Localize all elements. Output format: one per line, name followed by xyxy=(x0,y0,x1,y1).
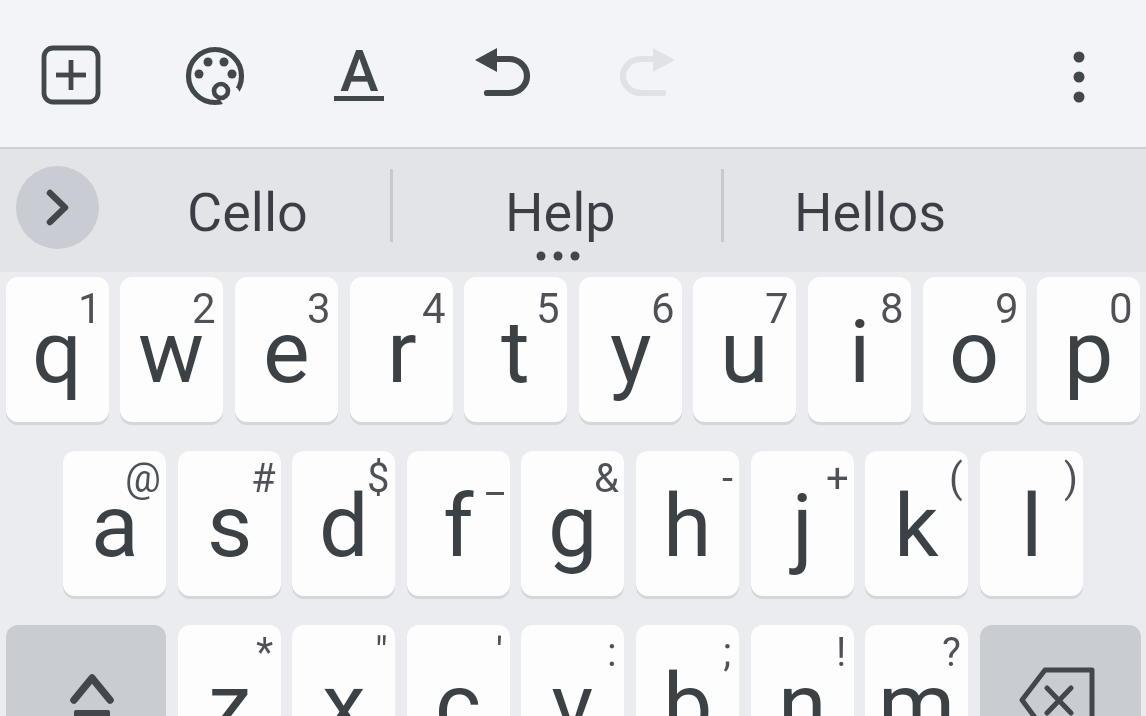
staticText: & xyxy=(594,455,619,502)
staticText: 8 xyxy=(880,284,904,333)
button[interactable]: k xyxy=(865,451,968,596)
button[interactable]: r xyxy=(350,277,453,422)
staticText: 7 xyxy=(765,284,789,333)
staticText: Help xyxy=(505,181,616,244)
staticText: z xyxy=(208,653,252,716)
button[interactable]: b xyxy=(636,625,739,716)
button[interactable] xyxy=(16,166,99,249)
staticText: y xyxy=(610,300,652,403)
staticText: u xyxy=(720,300,769,403)
staticText: e xyxy=(263,300,310,403)
staticText: 6 xyxy=(651,284,675,333)
staticText: a xyxy=(91,474,139,577)
button[interactable]: f xyxy=(407,451,510,596)
staticText: ? xyxy=(942,629,961,676)
staticText: # xyxy=(251,455,276,502)
staticText: n xyxy=(778,653,827,716)
button[interactable] xyxy=(38,42,104,108)
staticText: m xyxy=(878,653,956,716)
staticText: s xyxy=(207,474,253,577)
button[interactable]: g xyxy=(521,451,624,596)
button[interactable]: v xyxy=(521,625,624,716)
staticText: o xyxy=(949,300,1000,403)
staticText: t xyxy=(501,300,530,403)
button[interactable]: j xyxy=(751,451,854,596)
button[interactable] xyxy=(182,45,246,109)
staticText: ) xyxy=(1064,455,1078,502)
staticText: k xyxy=(894,474,939,577)
button[interactable]: q xyxy=(6,277,109,422)
staticText: * xyxy=(256,629,274,676)
staticText: 0 xyxy=(1109,284,1133,333)
button[interactable]: A xyxy=(327,30,391,114)
staticText: h xyxy=(663,474,712,577)
button[interactable]: n xyxy=(751,625,854,716)
staticText: j xyxy=(792,474,814,577)
staticText: " xyxy=(375,629,388,676)
staticText: b xyxy=(663,653,713,716)
staticText: ! xyxy=(836,629,847,676)
button[interactable] xyxy=(611,38,683,110)
staticText: l xyxy=(1021,474,1043,577)
staticText: ( xyxy=(949,455,963,502)
button[interactable]: h xyxy=(636,451,739,596)
staticText: _ xyxy=(486,455,505,502)
staticText: Hellos xyxy=(794,181,947,244)
staticText: : xyxy=(607,629,617,676)
staticText: $ xyxy=(367,455,390,502)
staticText: p xyxy=(1064,300,1114,403)
button[interactable]: Hellos xyxy=(740,180,1000,244)
button[interactable]: i xyxy=(808,277,911,422)
staticText: d xyxy=(319,474,369,577)
staticText: + xyxy=(826,455,849,502)
staticText: f xyxy=(443,474,474,577)
staticText: 3 xyxy=(307,284,331,333)
button[interactable] xyxy=(980,625,1141,716)
button[interactable]: p xyxy=(1037,277,1140,422)
staticText: q xyxy=(32,300,83,403)
button[interactable]: d xyxy=(292,451,395,596)
button[interactable]: c xyxy=(407,625,510,716)
button[interactable]: o xyxy=(923,277,1026,422)
staticText: ' xyxy=(496,629,503,676)
staticText: v xyxy=(551,653,594,716)
button[interactable]: e xyxy=(235,277,338,422)
button[interactable]: a xyxy=(63,451,166,596)
button[interactable]: y xyxy=(579,277,682,422)
staticText: 9 xyxy=(995,284,1019,333)
staticText: @ xyxy=(125,455,161,502)
staticText: A xyxy=(340,37,379,105)
staticText: 4 xyxy=(422,284,446,333)
staticText: Cello xyxy=(187,181,308,244)
button[interactable]: t xyxy=(464,277,567,422)
button[interactable] xyxy=(1058,36,1100,118)
button[interactable]: z xyxy=(178,625,281,716)
staticText: x xyxy=(322,653,366,716)
staticText: r xyxy=(387,300,417,403)
button[interactable]: u xyxy=(693,277,796,422)
button[interactable] xyxy=(467,38,539,110)
staticText: g xyxy=(548,474,598,577)
staticText: w xyxy=(138,300,205,403)
button[interactable]: Help xyxy=(430,180,690,244)
staticText: 5 xyxy=(536,284,560,333)
staticText: c xyxy=(435,653,482,716)
staticText: 1 xyxy=(78,284,102,333)
staticText: - xyxy=(722,455,734,502)
button[interactable]: Cello xyxy=(117,180,377,244)
staticText: 2 xyxy=(192,284,216,333)
button[interactable]: m xyxy=(865,625,968,716)
button[interactable]: l xyxy=(980,451,1083,596)
staticText: i xyxy=(849,300,871,403)
button[interactable]: w xyxy=(120,277,223,422)
button[interactable] xyxy=(6,625,166,716)
button[interactable]: x xyxy=(292,625,395,716)
staticText: ; xyxy=(723,629,732,676)
button[interactable]: s xyxy=(178,451,281,596)
